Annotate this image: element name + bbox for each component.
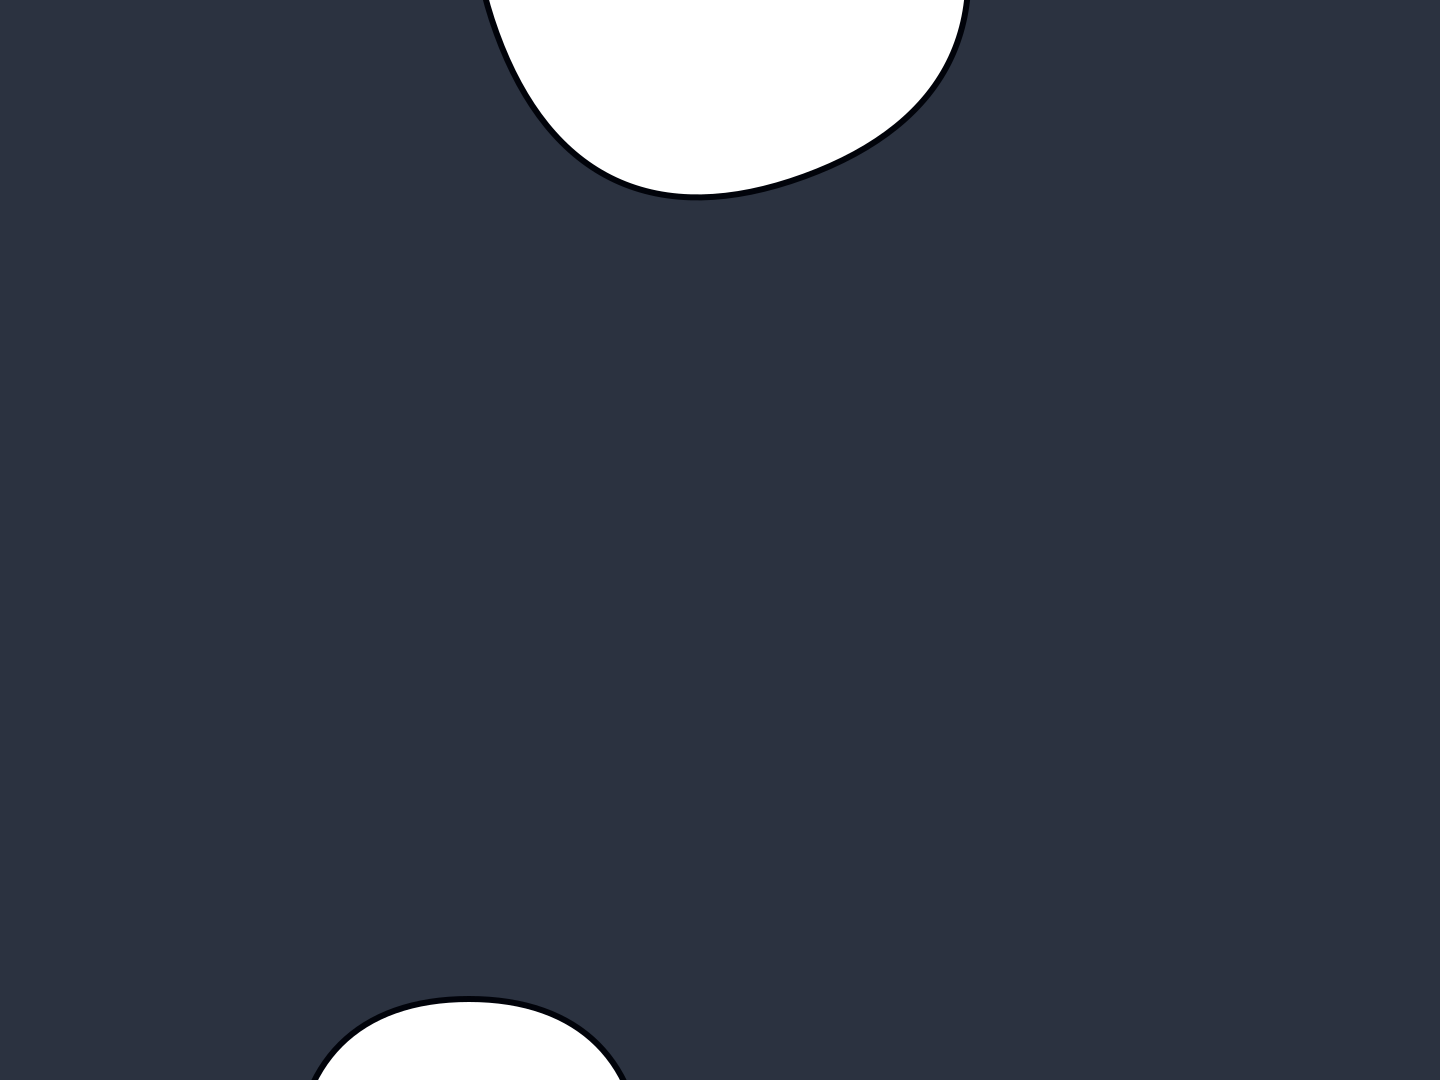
button[interactable]: Primary bubble: [482, 0, 962, 191]
button[interactable]: Secondary bubble: [295, 999, 643, 1080]
